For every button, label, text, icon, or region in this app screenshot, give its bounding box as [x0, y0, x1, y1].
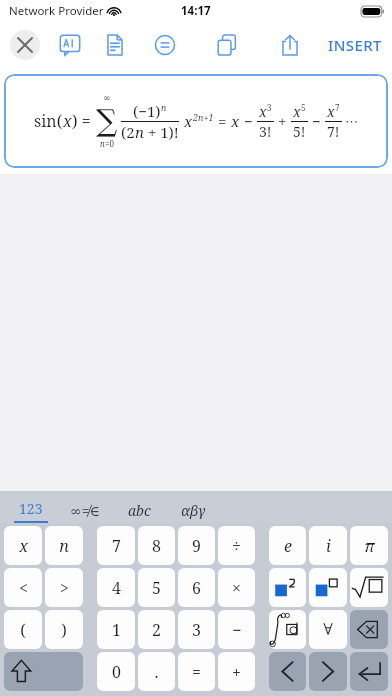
- button[interactable]: Copy: [212, 30, 242, 60]
- button[interactable]: 6: [178, 568, 215, 607]
- staticText: (−1): [133, 101, 161, 121]
- button[interactable]: 123: [8, 499, 54, 523]
- button[interactable]: INSERT: [328, 35, 382, 55]
- staticText: =: [192, 661, 201, 683]
- staticText: n: [135, 122, 144, 142]
- button[interactable]: π: [350, 526, 388, 565]
- button[interactable]: 2: [138, 610, 175, 649]
- staticText: 8: [152, 535, 161, 557]
- staticText: x: [63, 110, 72, 132]
- staticText: ×: [232, 577, 241, 599]
- staticText: ∑: [96, 103, 118, 138]
- staticText: −: [308, 111, 325, 131]
- staticText: 2n+1: [193, 111, 214, 123]
- button[interactable]: Move left: [269, 652, 306, 691]
- staticText: +: [274, 111, 291, 131]
- button[interactable]: n: [45, 526, 83, 565]
- button[interactable]: ÷: [218, 526, 255, 565]
- button[interactable]: 3: [178, 610, 215, 649]
- button[interactable]: <: [4, 568, 42, 607]
- staticText: 4: [112, 577, 121, 599]
- button[interactable]: 9: [178, 526, 215, 565]
- staticText: +: [232, 661, 241, 683]
- staticText: n: [161, 101, 167, 113]
- button[interactable]: Shift: [4, 652, 83, 691]
- staticText: ): [61, 619, 67, 641]
- staticText: 3: [192, 619, 201, 641]
- staticText: ∞: [103, 93, 111, 103]
- staticText: n: [59, 535, 69, 557]
- button[interactable]: (: [4, 610, 42, 649]
- staticText: αβγ: [181, 501, 206, 520]
- button[interactable]: Backspace: [350, 610, 388, 649]
- staticText: 6: [192, 577, 201, 599]
- staticText: abc: [128, 501, 151, 520]
- staticText: ÷: [232, 535, 241, 557]
- button[interactable]: αβγ: [170, 501, 216, 523]
- staticText: 3!: [259, 122, 272, 141]
- button[interactable]: 7: [97, 526, 135, 565]
- staticText: 0: [112, 661, 121, 683]
- staticText: x: [231, 111, 240, 131]
- button[interactable]: =: [178, 652, 215, 691]
- staticText: 2: [152, 619, 161, 641]
- staticText: −: [240, 111, 257, 131]
- button[interactable]: Power: [309, 568, 347, 607]
- staticText: i: [326, 535, 331, 557]
- button[interactable]: 1: [97, 610, 135, 649]
- button[interactable]: .: [138, 652, 175, 691]
- staticText: 3: [267, 102, 272, 113]
- button[interactable]: Share: [275, 30, 305, 60]
- button[interactable]: abc: [116, 501, 162, 523]
- staticText: (: [20, 619, 26, 641]
- staticText: 1: [112, 619, 121, 641]
- staticText: 7: [335, 102, 340, 113]
- staticText: 7!: [327, 122, 340, 141]
- button[interactable]: 8: [138, 526, 175, 565]
- button[interactable]: ): [45, 610, 83, 649]
- staticText: 5: [152, 577, 161, 599]
- staticText: x: [19, 535, 28, 557]
- staticText: .: [154, 661, 159, 683]
- button[interactable]: ×: [218, 568, 255, 607]
- button[interactable]: Square root: [350, 568, 388, 607]
- button[interactable]: Integral: [269, 610, 306, 649]
- button[interactable]: ∞≠∈: [62, 501, 108, 523]
- button[interactable]: x: [4, 526, 42, 565]
- staticText: 7: [112, 535, 121, 557]
- button[interactable]: Enter: [350, 652, 388, 691]
- staticText: x: [259, 102, 267, 121]
- staticText: <: [19, 577, 28, 599]
- button[interactable]: +: [218, 652, 255, 691]
- button[interactable]: 4: [97, 568, 135, 607]
- staticText: 5: [301, 102, 306, 113]
- staticText: 14:17: [181, 3, 211, 19]
- button[interactable]: Equation: [150, 30, 180, 60]
- button[interactable]: sin(: [4, 74, 388, 168]
- staticText: (2: [121, 122, 135, 142]
- staticText: x: [293, 102, 301, 121]
- staticText: INSERT: [328, 35, 382, 55]
- staticText: sin(: [34, 110, 63, 132]
- button[interactable]: Squared: [269, 568, 306, 607]
- button[interactable]: Document: [100, 30, 130, 60]
- button[interactable]: Close: [10, 30, 40, 60]
- staticText: 9: [192, 535, 201, 557]
- staticText: ⋯: [345, 114, 358, 129]
- staticText: >: [60, 577, 69, 599]
- button[interactable]: AI assistant: [55, 30, 85, 60]
- staticText: Network Provider: [9, 3, 104, 19]
- button[interactable]: 0: [97, 652, 135, 691]
- staticText: ∀: [323, 620, 333, 639]
- button[interactable]: −: [218, 610, 255, 649]
- staticText: n: [100, 138, 105, 149]
- button[interactable]: >: [45, 568, 83, 607]
- button[interactable]: i: [309, 526, 347, 565]
- staticText: + 1)!: [144, 122, 179, 142]
- staticText: −: [232, 619, 242, 641]
- staticText: π: [364, 535, 375, 557]
- button[interactable]: 5: [138, 568, 175, 607]
- button[interactable]: ∀: [309, 610, 347, 649]
- button[interactable]: Move right: [309, 652, 347, 691]
- button[interactable]: e: [269, 526, 306, 565]
